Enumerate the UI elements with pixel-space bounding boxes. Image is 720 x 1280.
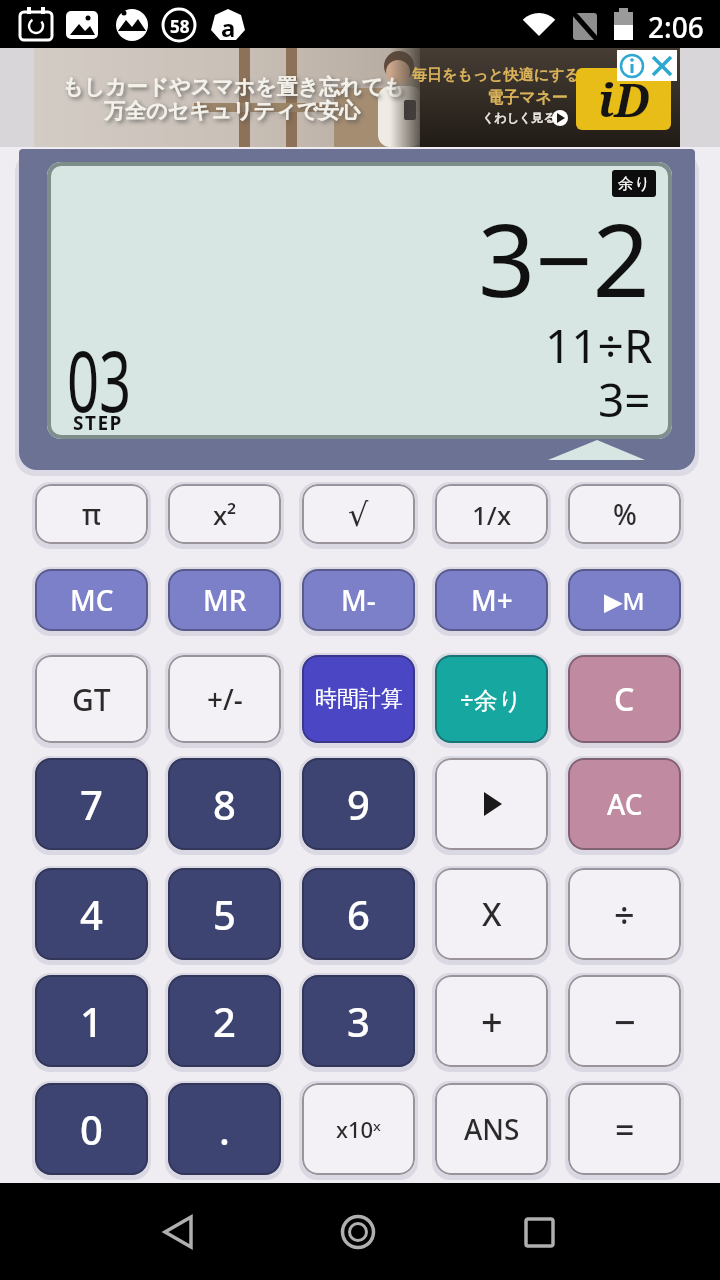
staticText: 3	[347, 994, 370, 1048]
staticText: x²	[213, 497, 237, 532]
button[interactable]: ANS	[435, 1083, 548, 1175]
button[interactable]: 4	[35, 868, 148, 960]
button[interactable]: 7	[35, 758, 148, 850]
staticText: .	[219, 1102, 230, 1156]
button[interactable]	[488, 1197, 588, 1267]
button[interactable]: −	[568, 975, 681, 1067]
button[interactable]: C	[568, 655, 681, 743]
button[interactable]: 時間計算	[302, 655, 415, 743]
staticText: 03	[67, 322, 132, 436]
staticText: 0	[80, 1102, 103, 1156]
button[interactable]: +	[435, 975, 548, 1067]
button[interactable]: AC	[568, 758, 681, 850]
staticText: 3=	[598, 368, 651, 420]
staticText: 6	[347, 887, 370, 941]
button[interactable]: 8	[168, 758, 281, 850]
staticText: 7	[80, 777, 103, 831]
button[interactable]: π	[35, 484, 148, 544]
button[interactable]: 2	[168, 975, 281, 1067]
staticText: a	[221, 11, 236, 44]
staticText: X	[482, 892, 502, 936]
staticText: 2	[213, 994, 236, 1048]
staticText: x10ˣ	[336, 1114, 381, 1144]
staticText: 5	[213, 887, 236, 941]
button[interactable]	[130, 1197, 230, 1267]
staticText: GT	[72, 679, 111, 720]
staticText: ANS	[464, 1110, 520, 1148]
button[interactable]: +/-	[168, 655, 281, 743]
staticText: ÷	[614, 890, 635, 939]
button[interactable]	[617, 50, 677, 81]
button[interactable]: x²	[168, 484, 281, 544]
staticText: ÷余り	[460, 683, 523, 716]
button[interactable]: ÷	[568, 868, 681, 960]
staticText: =	[615, 1106, 635, 1152]
staticText: 11÷R	[545, 314, 653, 370]
staticText: 1/x	[472, 497, 512, 532]
staticText: MR	[203, 581, 247, 619]
button[interactable]: 5	[168, 868, 281, 960]
staticText: +	[481, 995, 503, 1047]
staticText: 58	[170, 15, 190, 38]
staticText: √	[348, 496, 369, 533]
button[interactable]: MR	[168, 569, 281, 631]
staticText: 1	[80, 994, 103, 1048]
staticText: 毎日をもっと快適にする	[412, 66, 580, 85]
button[interactable]: ÷余り	[435, 655, 548, 743]
button[interactable]: M+	[435, 569, 548, 631]
button[interactable]: ▶M	[568, 569, 681, 631]
staticText: ▶M	[604, 584, 645, 617]
staticText: 2:06	[648, 8, 704, 46]
staticText: +/-	[207, 680, 243, 718]
staticText: AC	[607, 785, 643, 823]
staticText: %	[613, 495, 637, 533]
button[interactable]: もしカードやスマホを置き忘れても	[0, 48, 720, 147]
button[interactable]: MC	[35, 569, 148, 631]
staticText: −	[614, 995, 636, 1047]
staticText: M+	[471, 581, 513, 619]
staticText: MC	[70, 581, 114, 619]
staticText: π	[82, 495, 102, 533]
button[interactable]: 1	[35, 975, 148, 1067]
button[interactable]: =	[568, 1083, 681, 1175]
staticText: 時間計算	[315, 685, 403, 713]
staticText: STEP	[73, 410, 123, 436]
button[interactable]: 6	[302, 868, 415, 960]
staticText: 余り	[618, 174, 651, 194]
button[interactable]: 0	[35, 1083, 148, 1175]
staticText: 9	[347, 777, 370, 831]
staticText: くわしく見る	[482, 110, 556, 125]
button[interactable]: .	[168, 1083, 281, 1175]
staticText: 3−2	[478, 190, 650, 320]
button[interactable]	[435, 758, 548, 850]
staticText: M-	[341, 581, 376, 619]
button[interactable]: X	[435, 868, 548, 960]
staticText: 4	[80, 887, 103, 941]
button[interactable]: x10ˣ	[302, 1083, 415, 1175]
staticText: iD	[598, 68, 650, 130]
button[interactable]: %	[568, 484, 681, 544]
button[interactable]	[308, 1197, 408, 1267]
button[interactable]: √	[302, 484, 415, 544]
staticText: 万全のセキュリティで安心	[104, 98, 360, 124]
staticText: 8	[213, 777, 236, 831]
staticText: C	[614, 677, 635, 721]
staticText: もしカードやスマホを置き忘れても	[62, 74, 405, 100]
button[interactable]: M-	[302, 569, 415, 631]
staticText: 電子マネー	[487, 88, 568, 108]
button[interactable]: 1/x	[435, 484, 548, 544]
button[interactable]: GT	[35, 655, 148, 743]
button[interactable]: 9	[302, 758, 415, 850]
button[interactable]: 3	[302, 975, 415, 1067]
